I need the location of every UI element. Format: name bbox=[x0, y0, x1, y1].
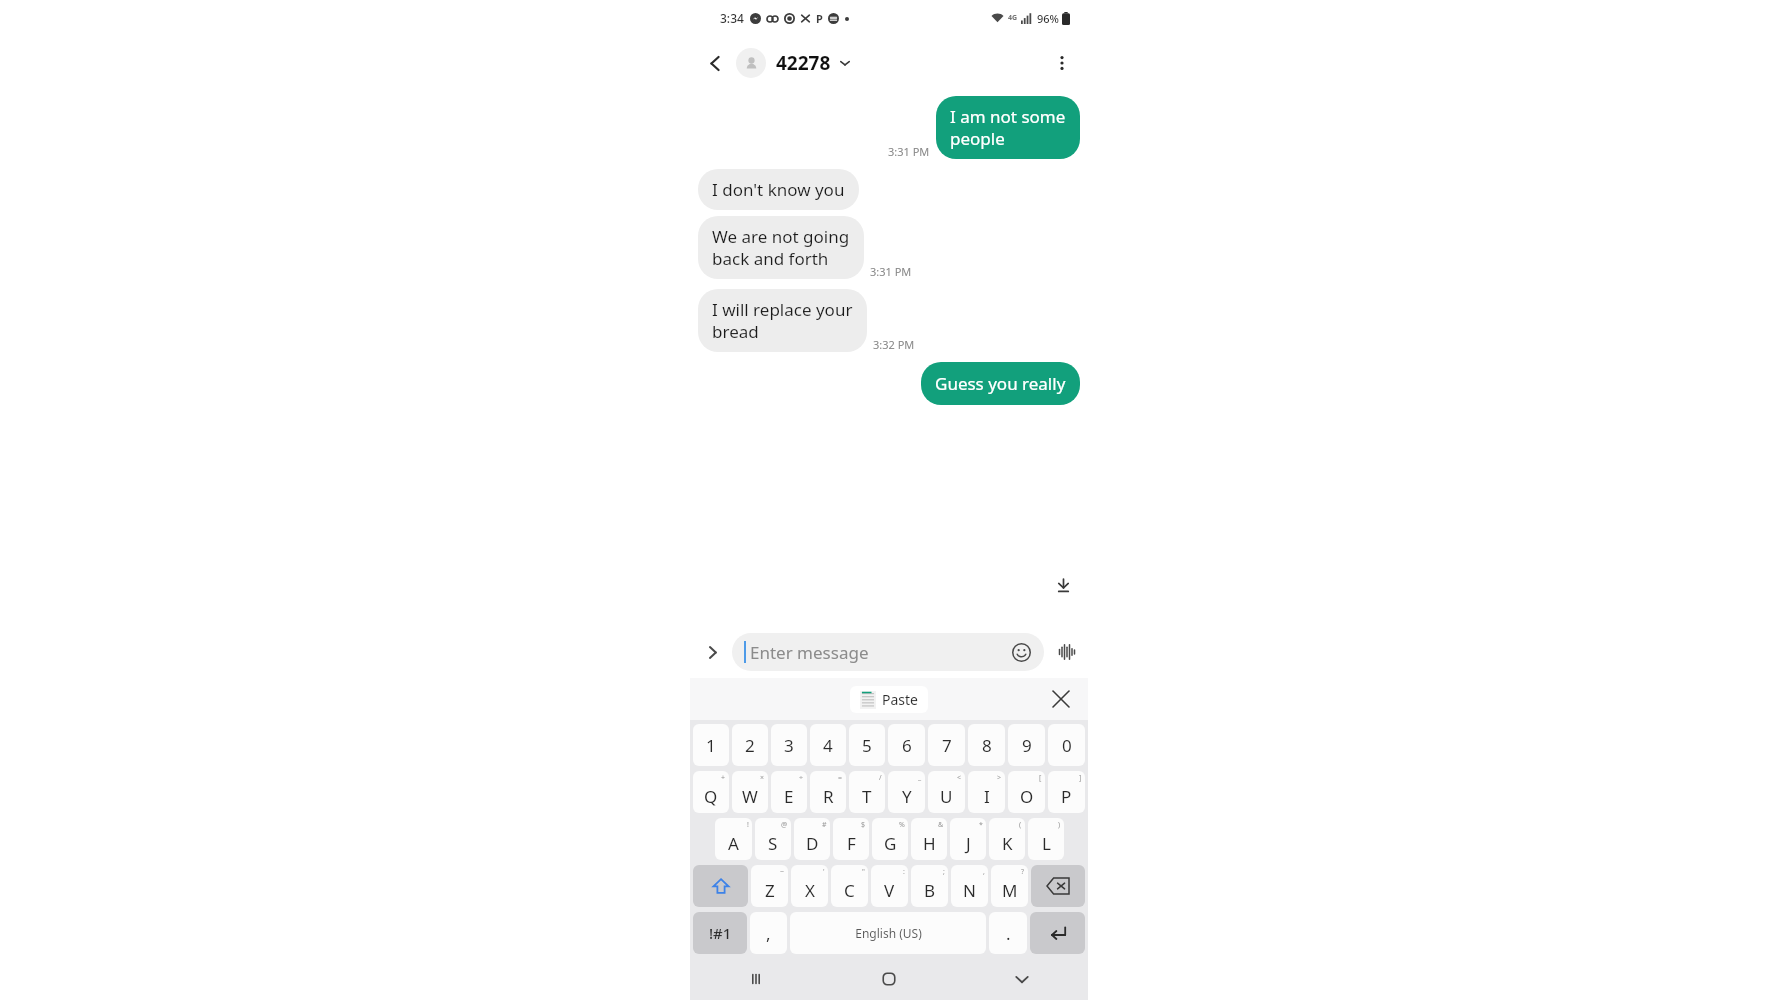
button[interactable]: % bbox=[872, 818, 908, 860]
staticText: M bbox=[1002, 879, 1018, 902]
button[interactable]: 2 bbox=[732, 724, 768, 766]
staticText: 1 bbox=[706, 734, 716, 757]
staticText: 6 bbox=[902, 734, 912, 757]
staticText: I bbox=[984, 785, 990, 808]
staticText: ( bbox=[1019, 820, 1022, 830]
staticText: _ bbox=[918, 773, 922, 783]
button[interactable]: Shift bbox=[693, 865, 748, 907]
staticText: P bbox=[1061, 785, 1072, 808]
staticText: 2 bbox=[745, 734, 755, 757]
button[interactable]: ; bbox=[911, 865, 948, 907]
button[interactable]: 4 bbox=[810, 724, 846, 766]
staticText: Guess you really bbox=[935, 372, 1066, 395]
button[interactable]: ÷ bbox=[771, 771, 807, 813]
button[interactable]: 42278 bbox=[776, 50, 851, 76]
button[interactable]: Hide keyboard bbox=[955, 958, 1088, 1000]
staticText: O bbox=[1020, 785, 1034, 808]
button[interactable]: !#1 bbox=[693, 912, 747, 954]
button[interactable]: 0 bbox=[1048, 724, 1085, 766]
button[interactable]: 8 bbox=[968, 724, 1005, 766]
button[interactable]: , bbox=[750, 912, 787, 954]
button[interactable]: Voice input bbox=[1052, 637, 1082, 667]
button[interactable]: : bbox=[871, 865, 908, 907]
staticText: 3:31 PM bbox=[888, 144, 930, 159]
button[interactable]: [ bbox=[1008, 771, 1045, 813]
button[interactable]: Close bbox=[1046, 684, 1076, 714]
button[interactable]: _ bbox=[888, 771, 925, 813]
button[interactable]: " bbox=[831, 865, 868, 907]
staticText: < bbox=[957, 773, 962, 783]
button[interactable]: 6 bbox=[888, 724, 925, 766]
staticText: X bbox=[805, 879, 815, 902]
staticText: * bbox=[979, 820, 983, 830]
button[interactable]: I will replace your bread bbox=[698, 289, 867, 352]
staticText: 5 bbox=[862, 734, 872, 757]
button[interactable]: ~ bbox=[751, 865, 788, 907]
button[interactable]: * bbox=[950, 818, 986, 860]
button[interactable]: ) bbox=[1028, 818, 1064, 860]
button[interactable]: 7 bbox=[928, 724, 965, 766]
staticText: We are not going back and forth bbox=[712, 225, 850, 270]
button[interactable]: × bbox=[732, 771, 768, 813]
staticText: R bbox=[823, 785, 834, 808]
button[interactable]: > bbox=[968, 771, 1005, 813]
button[interactable]: English (US) bbox=[790, 912, 986, 954]
staticText: ? bbox=[1021, 867, 1025, 877]
staticText: G bbox=[884, 832, 897, 855]
staticText: S bbox=[768, 832, 778, 855]
button[interactable]: , bbox=[951, 865, 988, 907]
button[interactable]: Expand options bbox=[696, 636, 728, 668]
staticText: F bbox=[847, 832, 856, 855]
button[interactable]: We are not going back and forth bbox=[698, 216, 864, 279]
button[interactable]: ' bbox=[791, 865, 828, 907]
button[interactable]: Recents bbox=[690, 958, 822, 1000]
button[interactable]: @ bbox=[755, 818, 791, 860]
button[interactable]: Paste bbox=[850, 686, 928, 713]
button[interactable]: $ bbox=[833, 818, 869, 860]
staticText: ) bbox=[1058, 820, 1061, 830]
button[interactable]: Enter bbox=[1030, 912, 1085, 954]
button[interactable]: + bbox=[693, 771, 729, 813]
staticText: / bbox=[879, 773, 882, 783]
staticText: [ bbox=[1039, 773, 1042, 783]
staticText: 9 bbox=[1022, 734, 1032, 757]
button[interactable]: Backspace bbox=[1031, 865, 1085, 907]
button[interactable]: 1 bbox=[693, 724, 729, 766]
button[interactable]: I am not some people bbox=[936, 96, 1080, 159]
staticText: V bbox=[884, 879, 895, 902]
button[interactable]: < bbox=[928, 771, 965, 813]
staticText: P bbox=[816, 11, 823, 26]
button[interactable]: ? bbox=[991, 865, 1028, 907]
button[interactable]: Enter message bbox=[732, 633, 1044, 671]
button[interactable]: / bbox=[849, 771, 885, 813]
staticText: 96% bbox=[1037, 11, 1059, 26]
button[interactable]: ( bbox=[989, 818, 1025, 860]
button[interactable]: I don't know you bbox=[698, 169, 859, 210]
button[interactable]: 9 bbox=[1008, 724, 1045, 766]
staticText: ~ bbox=[780, 867, 785, 877]
staticText: 42278 bbox=[776, 50, 831, 76]
staticText: 3:32 PM bbox=[873, 337, 915, 352]
button[interactable]: # bbox=[794, 818, 830, 860]
button[interactable]: Back bbox=[698, 46, 732, 80]
staticText: ; bbox=[943, 867, 945, 877]
button[interactable]: Emoji bbox=[1010, 641, 1032, 663]
staticText: + bbox=[721, 773, 726, 783]
button[interactable]: . bbox=[989, 912, 1027, 954]
button[interactable]: Home bbox=[822, 958, 955, 1000]
button[interactable]: Scroll to bottom bbox=[1044, 566, 1082, 604]
button[interactable]: 5 bbox=[849, 724, 885, 766]
button[interactable]: Guess you really bbox=[921, 362, 1080, 405]
button[interactable]: ] bbox=[1048, 771, 1085, 813]
button[interactable]: More options bbox=[1044, 45, 1080, 81]
staticText: I don't know you bbox=[712, 178, 845, 201]
staticText: , bbox=[766, 922, 771, 945]
button[interactable]: ! bbox=[715, 818, 752, 860]
button[interactable]: 3 bbox=[771, 724, 807, 766]
button[interactable]: & bbox=[911, 818, 947, 860]
staticText: Y bbox=[902, 785, 912, 808]
staticText: 8 bbox=[982, 734, 992, 757]
staticText: I am not some people bbox=[950, 105, 1066, 150]
staticText: 0 bbox=[1062, 734, 1072, 757]
button[interactable]: = bbox=[810, 771, 846, 813]
